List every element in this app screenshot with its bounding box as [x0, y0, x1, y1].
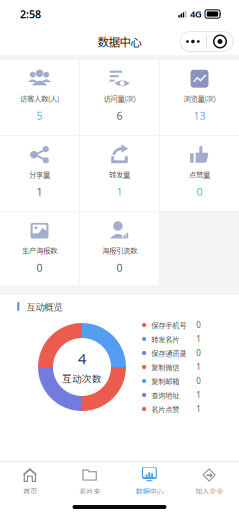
- staticText: 1: [196, 404, 201, 414]
- button[interactable]: 访问量(次): [80, 60, 159, 135]
- staticText: 转发名片: [151, 334, 179, 344]
- staticText: 2:58: [20, 7, 41, 21]
- staticText: 数据中心: [97, 33, 141, 50]
- staticText: 1: [196, 362, 201, 372]
- button[interactable]: 点赞量: [160, 136, 239, 211]
- staticText: 点赞量: [189, 169, 210, 179]
- staticText: 13: [193, 108, 205, 123]
- staticText: 0: [196, 348, 201, 358]
- button[interactable]: 名片夹: [60, 467, 120, 496]
- staticText: 1: [36, 184, 42, 199]
- button[interactable]: 首页: [0, 467, 60, 496]
- staticText: 0: [116, 260, 122, 275]
- button[interactable]: 转发量: [80, 136, 159, 211]
- staticText: 1: [196, 390, 201, 400]
- button[interactable]: 访客人数(人): [0, 60, 79, 135]
- staticText: 0: [36, 260, 42, 275]
- staticText: 互动次数: [62, 371, 102, 385]
- staticText: 复制邮箱: [151, 376, 179, 386]
- button[interactable]: More options: [180, 31, 233, 51]
- staticText: 4G: [190, 8, 202, 20]
- staticText: 海报引流数: [102, 245, 137, 255]
- button[interactable]: 生产海报数: [0, 212, 79, 285]
- staticText: 1: [116, 184, 122, 199]
- staticText: 分享量: [29, 169, 50, 179]
- staticText: 复制微信: [151, 362, 179, 372]
- staticText: 查询地址: [151, 390, 179, 400]
- staticText: 转发量: [109, 169, 130, 179]
- staticText: 保存通讯录: [151, 348, 186, 358]
- staticText: 生产海报数: [22, 245, 57, 255]
- staticText: 4: [78, 349, 86, 368]
- staticText: 0: [196, 184, 202, 199]
- button[interactable]: 分享量: [0, 136, 79, 211]
- staticText: 6: [116, 108, 122, 123]
- staticText: 名片点赞: [151, 404, 179, 414]
- staticText: 0: [196, 320, 201, 330]
- staticText: 1: [196, 334, 201, 344]
- button[interactable]: 浏览量(次): [160, 60, 239, 135]
- staticText: 加入企业: [195, 486, 223, 496]
- staticText: 保存手机号: [151, 320, 186, 330]
- staticText: 访问量(次): [103, 93, 135, 103]
- staticText: 首页: [23, 486, 37, 496]
- staticText: 互动概览: [26, 300, 62, 313]
- button[interactable]: 加入企业: [179, 467, 239, 496]
- staticText: 名片夹: [79, 486, 100, 496]
- staticText: 数据中心: [135, 486, 163, 496]
- staticText: 浏览量(次): [183, 93, 215, 103]
- button[interactable]: 海报引流数: [80, 212, 159, 285]
- button[interactable]: 数据中心: [119, 467, 179, 496]
- staticText: 0: [196, 376, 201, 386]
- staticText: 访客人数(人): [20, 93, 59, 103]
- staticText: 5: [36, 108, 42, 123]
